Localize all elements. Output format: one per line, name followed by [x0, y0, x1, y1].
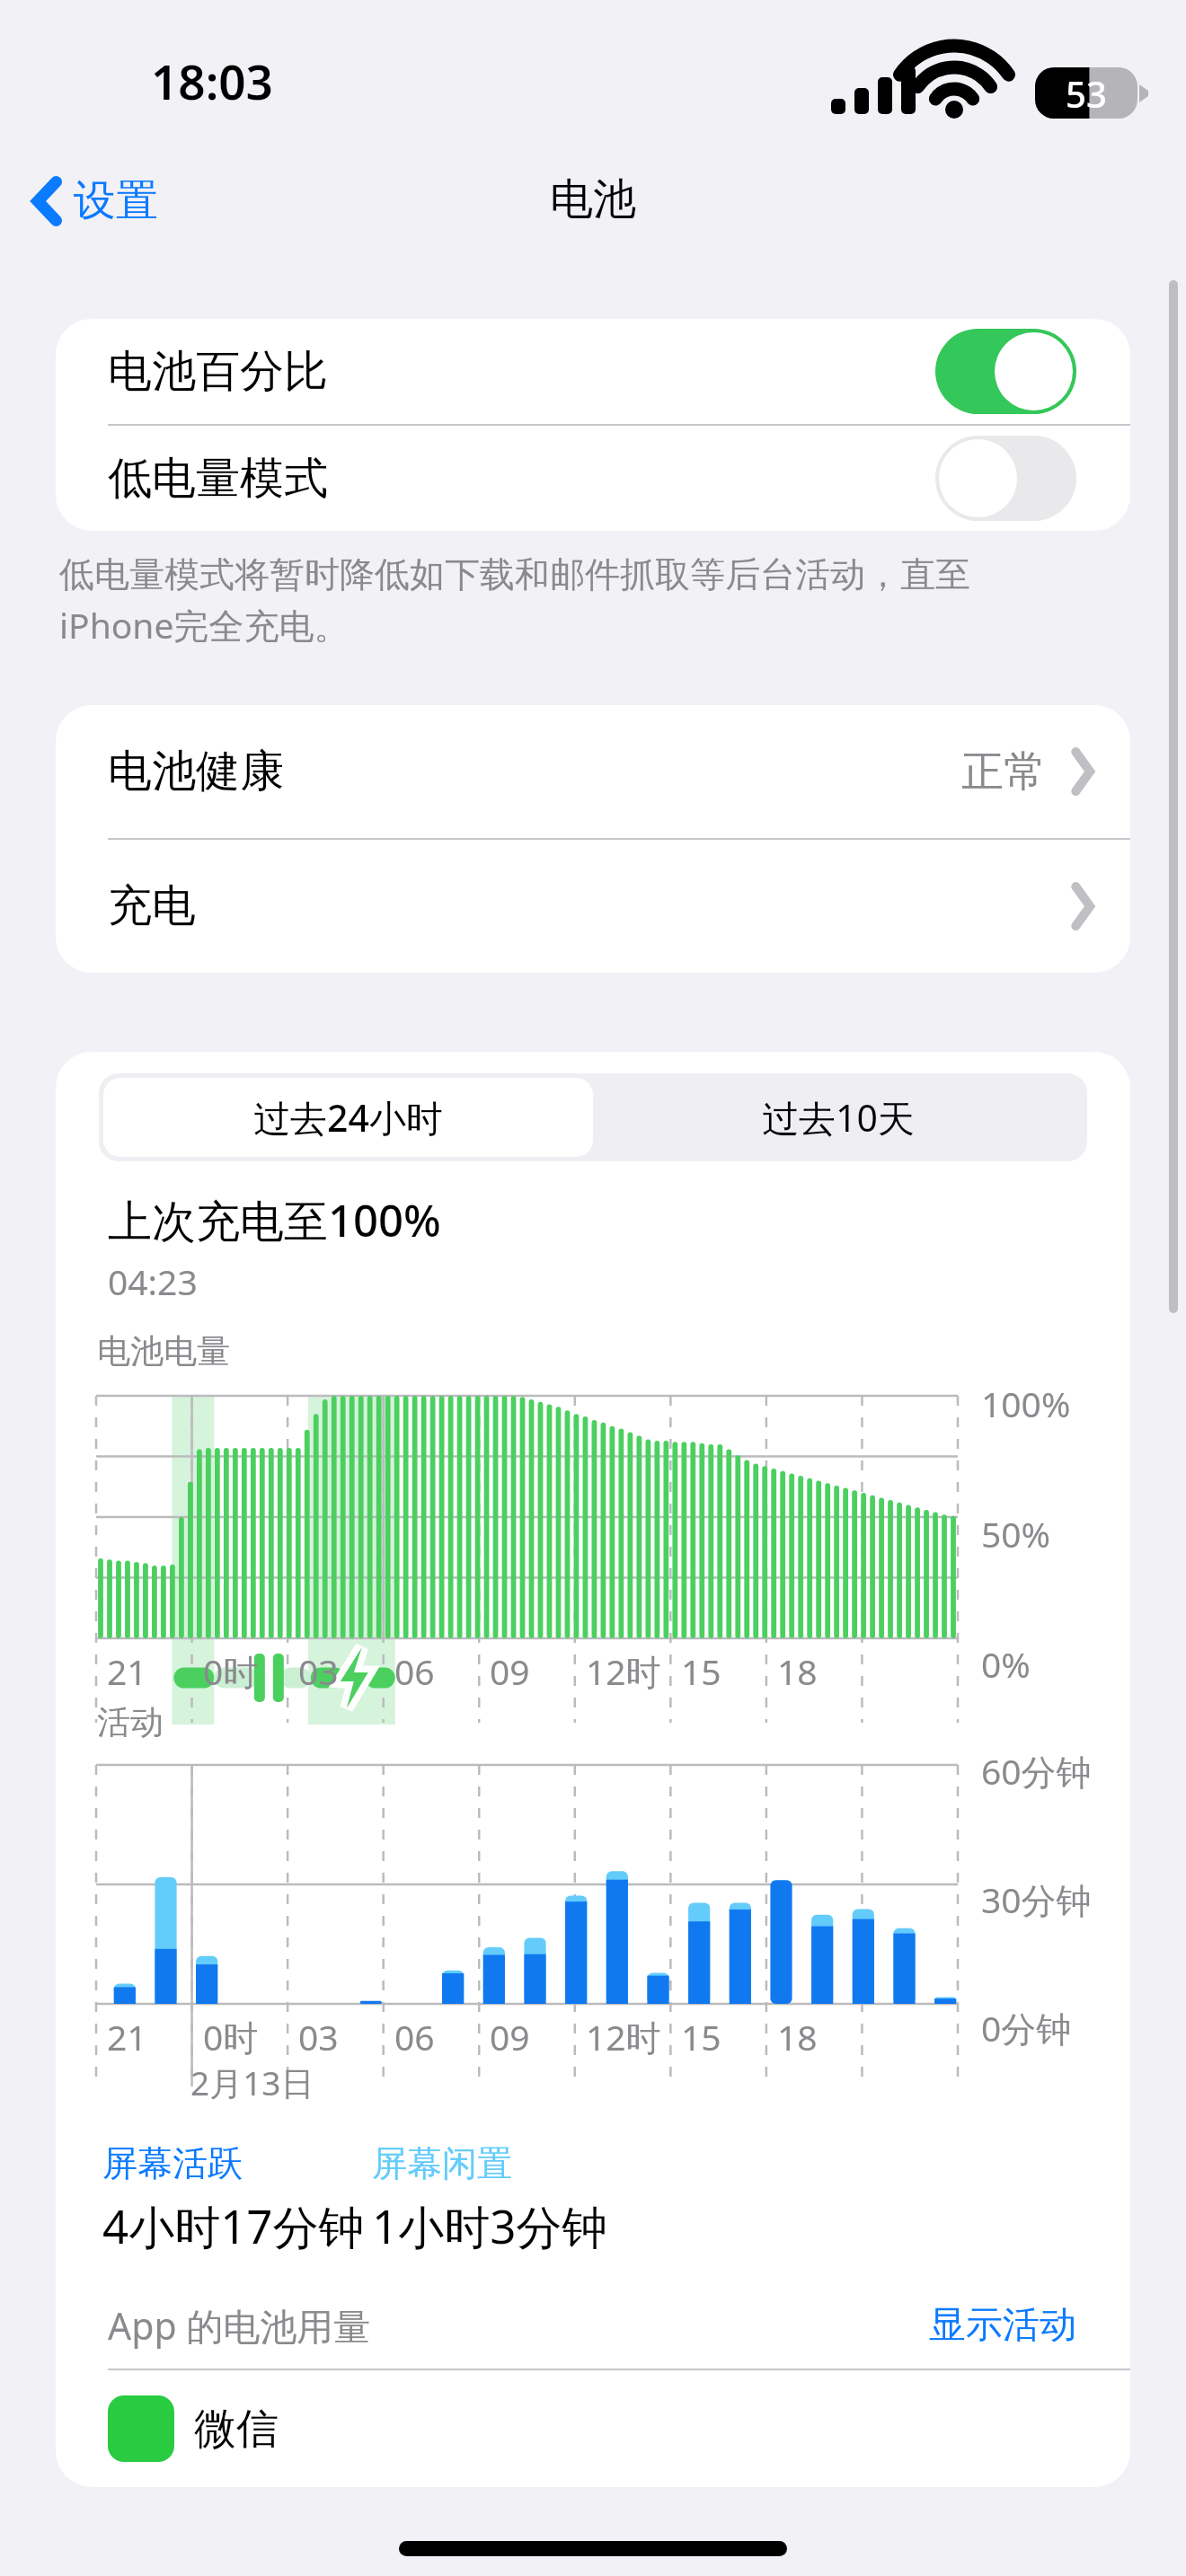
button[interactable]: 显示活动 — [925, 2298, 1080, 2352]
button[interactable]: 充电 — [56, 840, 1130, 973]
staticText: 50% — [981, 1510, 1051, 1557]
staticText: 0分钟 — [981, 2004, 1072, 2051]
staticText: 15 — [681, 2013, 721, 2060]
staticText: 电池 — [550, 172, 636, 226]
staticText: 12时 — [586, 1647, 661, 1695]
staticText: 电池健康 — [108, 744, 284, 799]
staticText: 设置 — [74, 174, 158, 227]
staticText: 过去24小时 — [253, 1092, 443, 1142]
staticText: 21 — [107, 2013, 147, 2060]
staticText: 18 — [777, 2013, 818, 2060]
staticText: 03 — [298, 2013, 339, 2060]
staticText: 微信 — [194, 2403, 279, 2456]
button[interactable]: 低电量模式 — [56, 426, 1130, 531]
staticText: 100% — [981, 1380, 1071, 1427]
staticText: 4小时17分钟 — [102, 2194, 365, 2257]
staticText: 04:23 — [108, 1257, 198, 1305]
staticText: 03 — [298, 1647, 339, 1695]
staticText: 12时 — [586, 2013, 661, 2060]
staticText: 显示活动 — [929, 2302, 1076, 2349]
staticText: 屏幕闲置 — [372, 2141, 512, 2185]
staticText: 53 — [1066, 69, 1107, 118]
button[interactable]: 电池健康 — [56, 705, 1130, 838]
staticText: 活动 — [97, 1701, 164, 1743]
staticText: 09 — [490, 2013, 530, 2060]
staticText: 低电量模式 — [108, 451, 328, 507]
button[interactable]: 微信 — [56, 2370, 1130, 2487]
button[interactable]: 过去24小时 — [103, 1078, 593, 1157]
staticText: 18:03 — [151, 49, 273, 113]
button[interactable]: 过去10天 — [593, 1078, 1083, 1157]
button[interactable]: 电池百分比 — [56, 319, 1130, 424]
staticText: 2月13日 — [190, 2060, 314, 2105]
staticText: 1小时3分钟 — [372, 2194, 608, 2257]
staticText: 60分钟 — [981, 1747, 1092, 1795]
button[interactable]: 返回 设置 — [23, 167, 167, 234]
staticText: 低电量模式将暂时降低如下载和邮件抓取等后台活动，直至 iPhone完全充电。 — [59, 552, 970, 649]
staticText: 0% — [981, 1640, 1031, 1688]
staticText: 30分钟 — [981, 1875, 1092, 1923]
staticText: 06 — [394, 2013, 435, 2060]
staticText: 06 — [394, 1647, 435, 1695]
staticText: 屏幕活跃 — [102, 2141, 243, 2185]
staticText: 0时 — [203, 1647, 259, 1695]
staticText: 上次充电至100% — [108, 1190, 441, 1250]
staticText: 18 — [777, 1647, 818, 1695]
staticText: 09 — [490, 1647, 530, 1695]
staticText: App 的电池用量 — [108, 2300, 371, 2351]
staticText: 电池百分比 — [108, 344, 328, 400]
staticText: 充电 — [108, 878, 196, 934]
staticText: 0时 — [203, 2013, 259, 2060]
staticText: 正常 — [961, 745, 1046, 798]
staticText: 电池电量 — [97, 1330, 230, 1372]
staticText: 21 — [107, 1647, 147, 1695]
staticText: 过去10天 — [762, 1092, 915, 1142]
staticText: 15 — [681, 1647, 721, 1695]
